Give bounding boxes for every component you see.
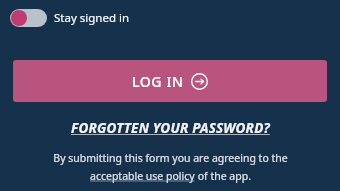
staticText: Stay signed in <box>54 10 130 26</box>
staticText: FORGOTTEN YOUR PASSWORD? <box>71 119 270 137</box>
staticText: By submitting this form you are agreeing… <box>53 151 288 165</box>
staticText: LOG IN <box>132 72 184 91</box>
staticText: acceptable use policy <box>90 169 195 183</box>
button[interactable]: Stay signed in <box>10 9 136 27</box>
button[interactable]: acceptable use policy <box>90 169 195 183</box>
staticText: of the app. <box>195 169 251 183</box>
button[interactable]: FORGOTTEN YOUR PASSWORD? <box>67 118 274 138</box>
button[interactable]: LOG IN <box>13 60 327 102</box>
